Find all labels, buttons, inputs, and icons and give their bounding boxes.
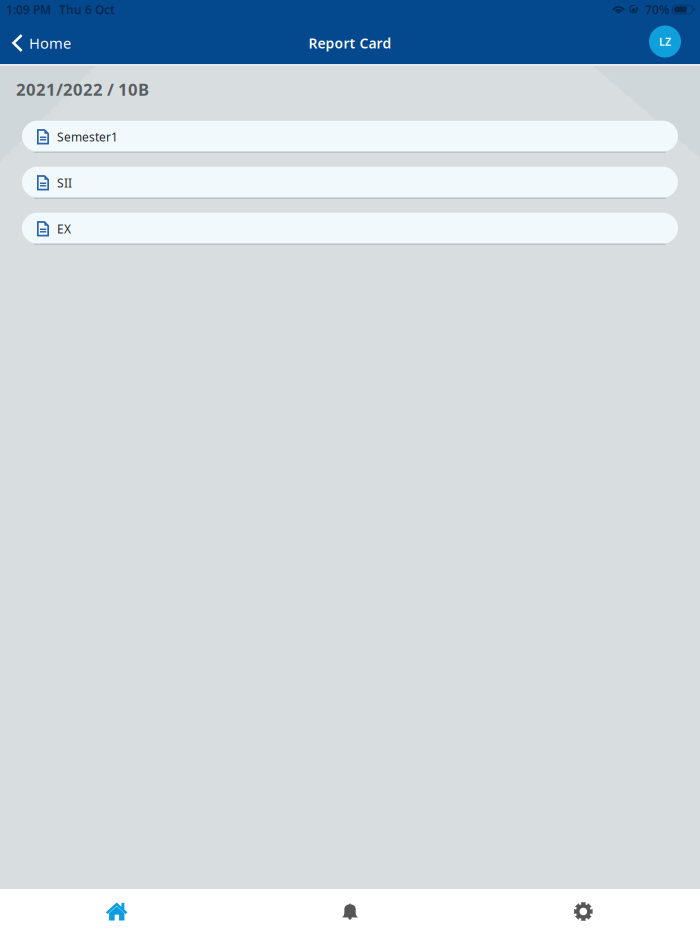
staticText: Thu 6 Oct (59, 1, 115, 17)
staticText: Semester1 (57, 129, 118, 145)
button[interactable]: EX (22, 213, 678, 245)
staticText: 2021/2022 / 10B (16, 78, 149, 101)
button[interactable]: Semester1 (22, 121, 678, 153)
button[interactable]: Home (0, 28, 71, 58)
staticText: LZ (659, 34, 671, 49)
staticText: 1:09 PM (6, 1, 51, 17)
button[interactable]: Settings (467, 889, 700, 934)
staticText: 70% (645, 1, 670, 17)
button[interactable]: Notifications (233, 889, 467, 934)
staticText: EX (57, 221, 71, 237)
button[interactable]: Account (649, 25, 700, 60)
staticText: Report Card (308, 34, 391, 52)
staticText: Home (29, 33, 71, 53)
staticText: SII (57, 175, 72, 191)
button[interactable]: SII (22, 167, 678, 199)
button[interactable]: Home (0, 889, 233, 934)
